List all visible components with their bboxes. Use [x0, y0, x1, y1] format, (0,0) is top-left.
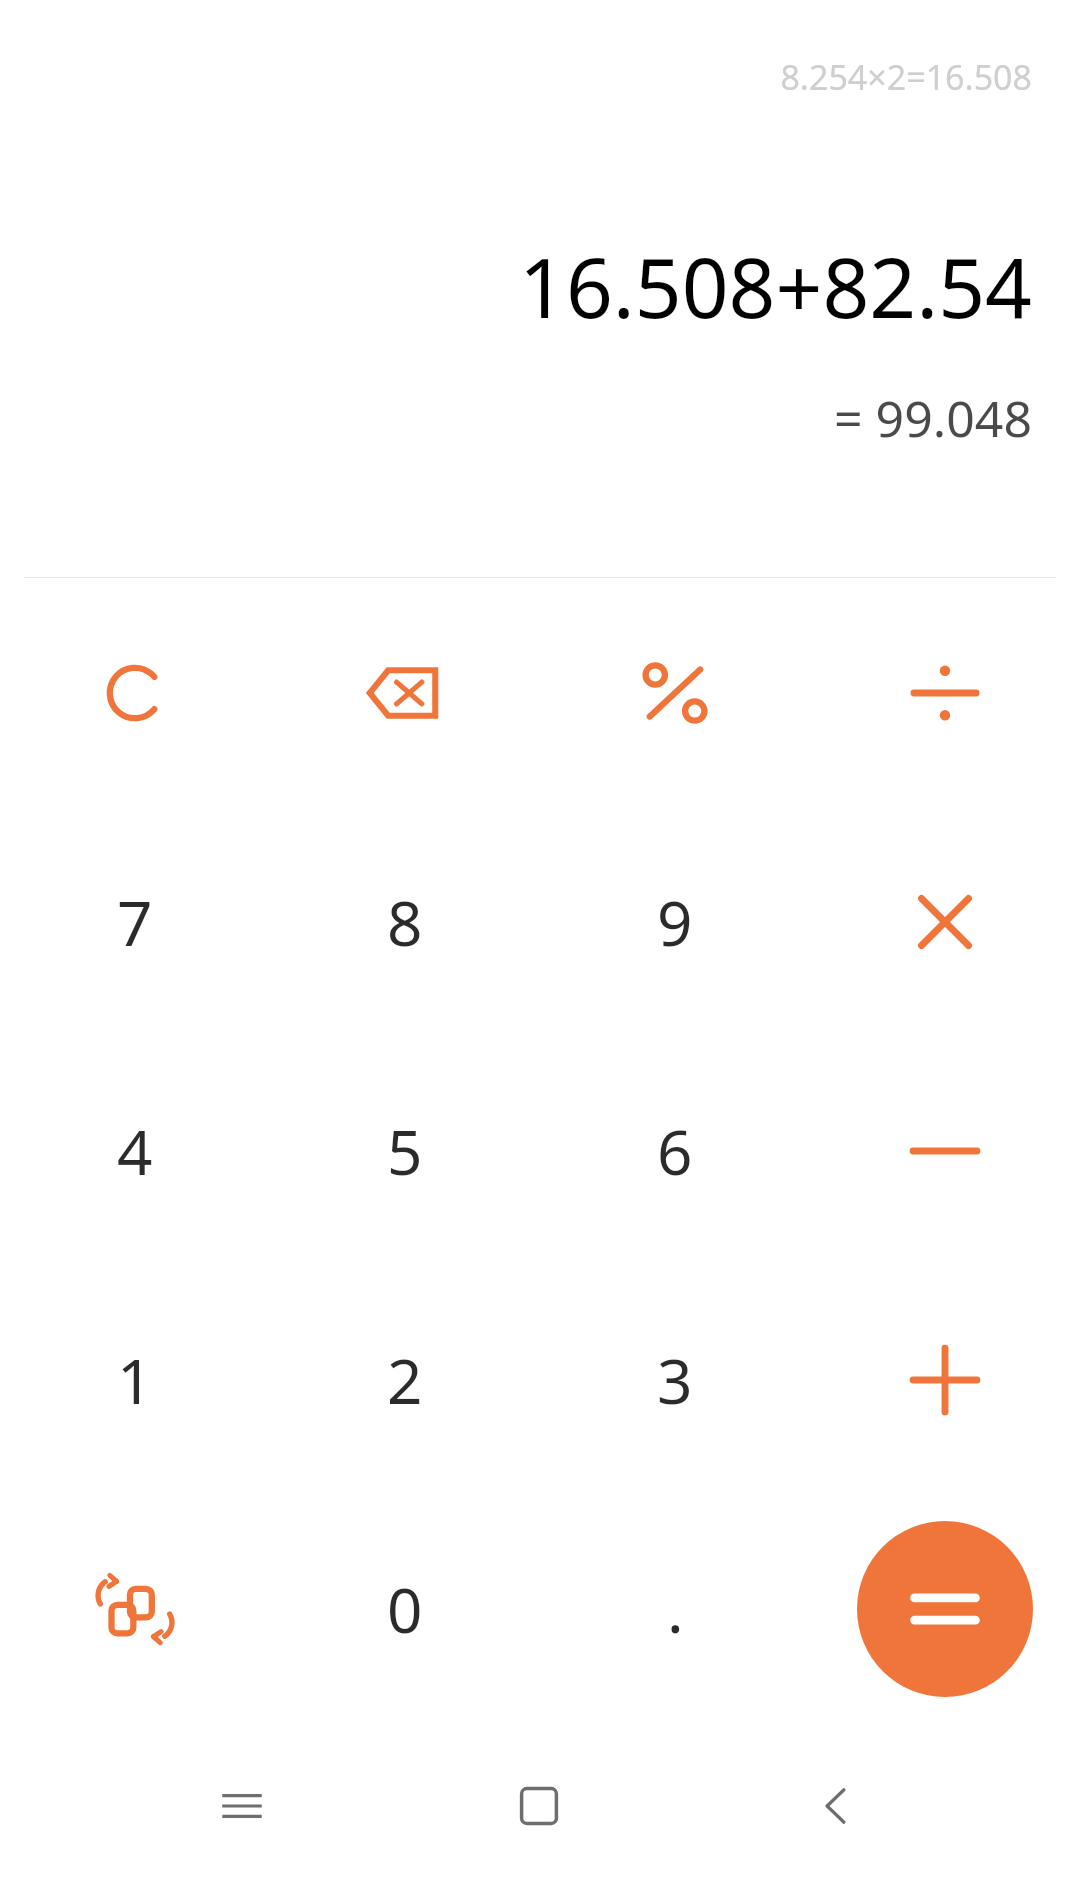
staticText: 0: [387, 1567, 423, 1651]
button[interactable]: 6: [540, 1036, 810, 1265]
button[interactable]: Percent: [540, 578, 810, 807]
staticText: 2: [387, 1338, 423, 1422]
staticText: = 99.048: [834, 384, 1032, 452]
button[interactable]: Multiply: [810, 807, 1080, 1036]
button[interactable]: Unit converter: [0, 1494, 270, 1723]
staticText: 8.254×2=16.508: [780, 54, 1032, 100]
button[interactable]: 4: [0, 1036, 270, 1265]
button[interactable]: Plus: [810, 1265, 1080, 1494]
staticText: 8: [387, 880, 423, 964]
button[interactable]: Backspace: [270, 578, 540, 807]
button[interactable]: Equals: [857, 1521, 1033, 1697]
button[interactable]: Minus: [810, 1036, 1080, 1265]
button[interactable]: .: [540, 1494, 810, 1723]
staticText: 9: [657, 880, 693, 964]
button[interactable]: 3: [540, 1265, 810, 1494]
staticText: 1: [117, 1338, 153, 1422]
staticText: 6: [657, 1109, 693, 1193]
button[interactable]: 8: [270, 807, 540, 1036]
button[interactable]: Recent apps: [187, 1751, 297, 1861]
button[interactable]: Divide: [810, 578, 1080, 807]
button[interactable]: 7: [0, 807, 270, 1036]
staticText: 3: [657, 1338, 693, 1422]
button[interactable]: 9: [540, 807, 810, 1036]
staticText: 16.508+82.54: [519, 230, 1032, 342]
button[interactable]: Clear: [0, 578, 270, 807]
button[interactable]: 1: [0, 1265, 270, 1494]
button[interactable]: Back: [782, 1751, 892, 1861]
staticText: 5: [387, 1109, 423, 1193]
button[interactable]: 5: [270, 1036, 540, 1265]
button[interactable]: 2: [270, 1265, 540, 1494]
staticText: .: [667, 1567, 684, 1651]
button[interactable]: 0: [270, 1494, 540, 1723]
staticText: 7: [117, 880, 153, 964]
staticText: 4: [117, 1109, 153, 1193]
button[interactable]: Home: [484, 1751, 594, 1861]
